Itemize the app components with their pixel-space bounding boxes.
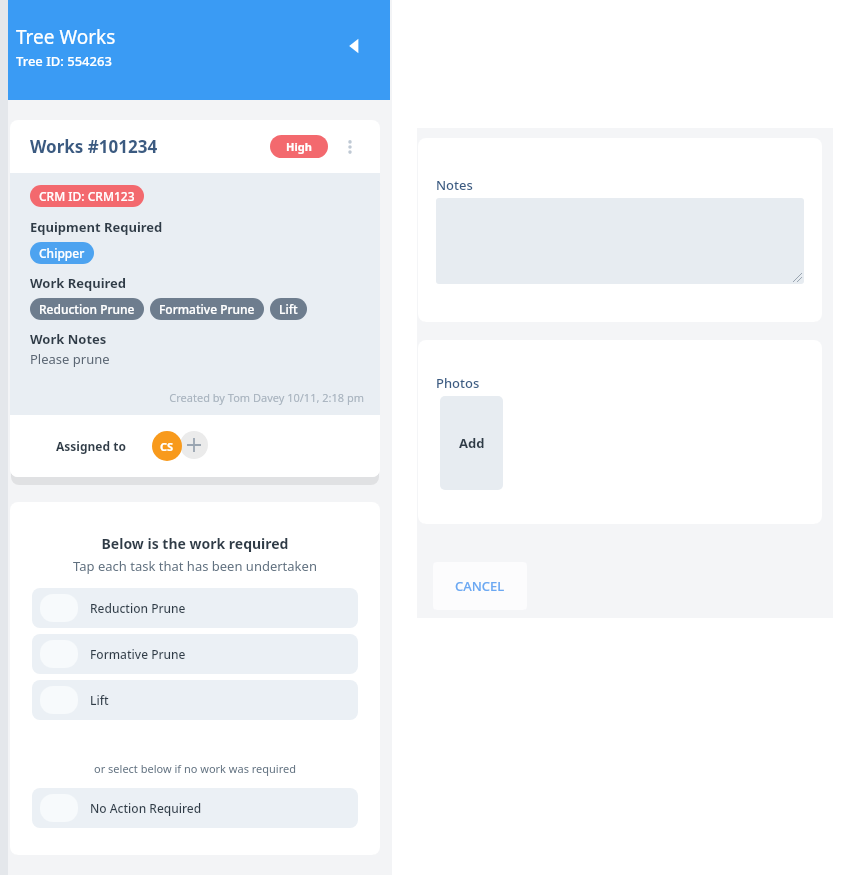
button[interactable]: Formative Prune (150, 298, 264, 320)
staticText: Work Notes (30, 330, 107, 348)
button[interactable]: Chipper (30, 242, 94, 264)
staticText: Formative Prune (90, 646, 186, 662)
staticText: Photos (436, 374, 480, 392)
staticText: Formative Prune (159, 301, 255, 317)
staticText: or select below if no work was required (32, 761, 358, 776)
staticText: Add (459, 434, 485, 452)
button[interactable]: Add assignee (180, 431, 208, 459)
staticText: Lift (279, 301, 298, 317)
staticText: Reduction Prune (39, 301, 135, 317)
staticText: Below is the work required (32, 534, 358, 553)
button[interactable]: CANCEL (433, 562, 527, 610)
button[interactable]: Add (440, 396, 503, 490)
button[interactable]: Formative Prune (32, 634, 358, 674)
staticText: CANCEL (455, 577, 505, 595)
staticText: Work Required (30, 274, 127, 292)
staticText: Notes (436, 176, 473, 194)
button[interactable]: No Action Required (32, 788, 358, 828)
staticText: Please prune (30, 350, 110, 368)
staticText: Created by Tom Davey 10/11, 2:18 pm (30, 390, 364, 405)
button[interactable]: High (270, 135, 328, 158)
staticText: Tap each task that has been undertaken (32, 557, 358, 575)
staticText: Equipment Required (30, 218, 163, 236)
button[interactable]: Reduction Prune (32, 588, 358, 628)
staticText: Chipper (39, 245, 85, 261)
staticText: High (286, 139, 312, 154)
button[interactable]: CS (152, 431, 182, 461)
staticText: Assigned to (56, 438, 126, 454)
staticText: Lift (90, 692, 109, 708)
staticText: CRM ID: CRM123 (39, 188, 135, 204)
staticText: CS (160, 439, 174, 454)
staticText: Tree ID: 554263 (16, 52, 112, 70)
button[interactable]: Lift (32, 680, 358, 720)
staticText: Works #101234 (30, 135, 158, 158)
staticText: Reduction Prune (90, 600, 186, 616)
staticText: No Action Required (90, 800, 202, 816)
staticText: Tree Works (16, 24, 116, 50)
button[interactable]: Lift (270, 298, 307, 320)
button[interactable]: CRM ID: CRM123 (30, 185, 144, 207)
button[interactable]: Back (332, 24, 376, 68)
button[interactable]: More options (336, 133, 364, 161)
button[interactable]: Reduction Prune (30, 298, 144, 320)
